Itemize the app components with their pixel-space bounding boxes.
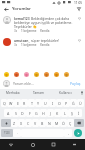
staticText: . — [17, 131, 18, 135]
button[interactable]: Share — [76, 6, 82, 12]
staticText: O — [58, 101, 61, 106]
staticText: B — [41, 121, 44, 126]
button[interactable]: D — [19, 109, 26, 117]
staticText: X — [20, 121, 23, 126]
button[interactable]: U — [42, 99, 49, 107]
button[interactable]: Like — [77, 16, 82, 21]
button[interactable]: Backspace — [74, 119, 84, 127]
staticText: Paylaş — [70, 81, 81, 86]
button[interactable]: Emoji — [63, 71, 70, 78]
button[interactable]: Ü — [77, 99, 84, 107]
staticText: K — [56, 111, 59, 116]
staticText: N — [48, 121, 51, 126]
staticText: H — [42, 111, 45, 116]
button[interactable]: R — [21, 99, 28, 107]
staticText: I — [52, 101, 54, 106]
button[interactable]: W — [7, 99, 14, 107]
staticText: Tamam — [33, 91, 45, 95]
button[interactable]: F — [26, 109, 33, 117]
staticText: Q — [3, 101, 6, 106]
staticText: Yorumlar — [12, 6, 31, 12]
button[interactable]: Emoji — [43, 71, 50, 78]
staticText: 1 beğenme — [21, 29, 37, 33]
button[interactable]: I — [49, 99, 56, 107]
staticText: G — [35, 111, 38, 116]
button[interactable]: Emoji — [13, 71, 20, 78]
button[interactable]: Ş — [68, 109, 75, 117]
staticText: P — [65, 101, 68, 106]
button[interactable]: Paylaş — [69, 80, 82, 87]
staticText: Merhaba — [6, 91, 20, 95]
staticText: 3s — [14, 29, 18, 33]
button[interactable]: Keyboard — [64, 139, 85, 150]
button[interactable]: Back — [3, 6, 9, 12]
staticText: T — [31, 101, 33, 106]
button[interactable]: Emoji — [23, 71, 30, 78]
staticText: V — [34, 121, 37, 126]
button[interactable]: Send — [74, 129, 82, 137]
button[interactable]: Ç — [67, 119, 74, 127]
staticText: umutcan_ — [14, 38, 30, 42]
button[interactable]: ?123 — [1, 129, 13, 137]
staticText: beklentiye uygun işçilik ve paketleme. — [14, 20, 73, 24]
button[interactable]: H — [40, 109, 47, 117]
button[interactable]: B — [39, 119, 46, 127]
button[interactable]: Voice input — [78, 89, 85, 97]
staticText: İ — [78, 111, 80, 116]
button[interactable]: Emoji — [3, 71, 10, 78]
staticText: Yanıtla — [40, 43, 50, 47]
button[interactable]: G — [33, 109, 40, 117]
staticText: D — [21, 111, 24, 116]
staticText: Beklediğimden çok daha güzel bir ürün ge… — [31, 16, 75, 20]
staticText: M — [55, 121, 59, 126]
staticText: Ğ — [72, 101, 75, 106]
staticText: C — [27, 121, 30, 126]
button[interactable]: İ — [75, 109, 82, 117]
button[interactable]: Shift — [1, 119, 11, 127]
button[interactable]: Q — [1, 99, 7, 107]
staticText: 11:05 — [74, 1, 83, 5]
staticText: Yorum ekle... — [13, 81, 69, 86]
button[interactable]: M — [53, 119, 60, 127]
staticText: W — [9, 101, 13, 106]
button[interactable]: Back — [0, 139, 22, 150]
button[interactable]: X — [18, 119, 25, 127]
button[interactable]: Emoji — [33, 71, 40, 78]
button[interactable]: E — [14, 99, 21, 107]
button[interactable]: Kullanıcı — [52, 89, 78, 97]
staticText: E — [17, 101, 19, 106]
button[interactable]: Ğ — [70, 99, 77, 107]
button[interactable]: Merhaba — [0, 89, 26, 97]
staticText: A — [7, 111, 10, 116]
button[interactable]: Ö — [60, 119, 67, 127]
button[interactable]: Emoji — [53, 71, 60, 78]
button[interactable]: O — [56, 99, 63, 107]
staticText: süper teşekkürler! — [31, 38, 60, 42]
button[interactable]: A — [4, 109, 12, 117]
button[interactable]: Like — [77, 38, 82, 43]
button[interactable]: L — [61, 109, 68, 117]
button[interactable]: T — [28, 99, 35, 107]
staticText: L — [64, 111, 66, 116]
staticText: Ü — [79, 101, 82, 106]
button[interactable]: Z — [11, 119, 18, 127]
staticText: U — [44, 101, 47, 106]
button[interactable]: V — [32, 119, 39, 127]
button[interactable]: Y — [35, 99, 42, 107]
button[interactable]: C — [25, 119, 32, 127]
staticText: Ş — [71, 111, 73, 116]
button[interactable]: J — [47, 109, 54, 117]
button[interactable]: S — [12, 109, 19, 117]
button[interactable]: N — [46, 119, 53, 127]
button[interactable]: K — [54, 109, 61, 117]
button[interactable]: Home — [22, 139, 43, 150]
button[interactable]: , — [64, 129, 72, 137]
staticText: 3s — [14, 43, 18, 47]
button[interactable]: Recents — [43, 139, 64, 150]
button[interactable]: P — [63, 99, 70, 107]
button[interactable]: Tamam — [26, 89, 52, 97]
staticText: S — [15, 111, 17, 116]
staticText: Ö — [62, 121, 65, 126]
